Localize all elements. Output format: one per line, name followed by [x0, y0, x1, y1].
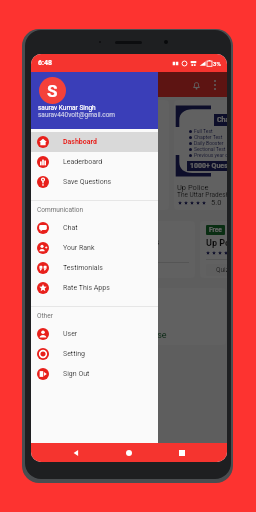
staticText: Testimonials [63, 264, 103, 272]
staticText: Sectional Test [194, 146, 226, 152]
staticText: Full Test [194, 128, 213, 134]
button[interactable]: Chat [31, 218, 158, 238]
button[interactable]: Setting [31, 344, 158, 364]
staticText: Up Police Constables [73, 237, 160, 248]
staticText: View Your Course [96, 330, 167, 341]
staticText: Language : हिंदी [73, 225, 117, 234]
button[interactable]: Save Questions [31, 172, 158, 192]
button[interactable]: Chapter Test [41, 100, 169, 210]
staticText: Quiz View [216, 266, 227, 274]
button[interactable]: User [31, 324, 158, 344]
staticText: Communication [37, 206, 84, 214]
staticText: S [47, 81, 58, 101]
staticText: Dashboard [63, 138, 97, 146]
staticText: Full Test [61, 128, 80, 134]
staticText: Rate This Apps [63, 284, 110, 292]
staticText: 5.0 [78, 198, 89, 207]
staticText: Daily Booster [194, 140, 224, 146]
staticText: Your Rank [63, 244, 95, 252]
button[interactable]: Language : हिंदी [67, 221, 195, 278]
staticText: 5.0 [211, 198, 222, 207]
staticText: 6:48 [38, 59, 53, 67]
button[interactable]: Chapter Test [174, 100, 227, 210]
staticText: Chapter Test [61, 134, 90, 140]
button[interactable]: Leaderboard [31, 152, 158, 172]
button[interactable]: Free [200, 221, 227, 278]
staticText: Chapter Test, Full Test [44, 309, 118, 318]
button[interactable]: Your Rank [31, 238, 158, 258]
button[interactable]: Dashboard [31, 132, 158, 152]
staticText: Sign Out [63, 370, 90, 378]
staticText: Previous year qu [194, 152, 227, 158]
button[interactable]: More options [206, 76, 224, 94]
staticText: Daily Booster [61, 140, 91, 146]
staticText: Chapter Test [194, 134, 223, 140]
staticText: Chapter Test [217, 116, 227, 124]
button[interactable]: Home [121, 445, 137, 461]
button[interactable]: Rate This Apps [31, 278, 158, 298]
button[interactable]: Test Series [36, 288, 226, 345]
staticText: saurav Kumar Singh [38, 104, 96, 112]
staticText: Test Series [44, 296, 90, 307]
staticText: Chapter Test [84, 116, 125, 124]
button[interactable]: Back [68, 445, 84, 461]
button[interactable]: Notifications [187, 76, 205, 94]
staticText: Up Police Constable [177, 183, 227, 192]
staticText: User [63, 330, 78, 338]
button[interactable]: Quiz View [216, 266, 227, 274]
button[interactable]: Testimonials [31, 258, 158, 278]
button[interactable]: Recent apps [174, 445, 190, 461]
staticText: Other [37, 312, 53, 320]
staticText: The Uttar Pradesh Police [177, 191, 227, 199]
staticText: 1000+ Questions [57, 162, 111, 170]
staticText: Leaderboard [63, 158, 103, 166]
staticText: Up Police [206, 238, 227, 249]
staticText: Up Police Constable [44, 183, 112, 192]
button[interactable]: Sign Out [31, 364, 158, 384]
staticText: saurav440volt@gmail.com [38, 111, 116, 119]
staticText: Chat [63, 224, 78, 232]
staticText: 3% [213, 60, 221, 67]
staticText: Free [209, 226, 222, 234]
staticText: 1000+ Questions [190, 162, 227, 170]
staticText: Setting [63, 350, 85, 358]
staticText: Save Questions [63, 178, 112, 186]
button[interactable]: View Your Course [36, 326, 226, 344]
